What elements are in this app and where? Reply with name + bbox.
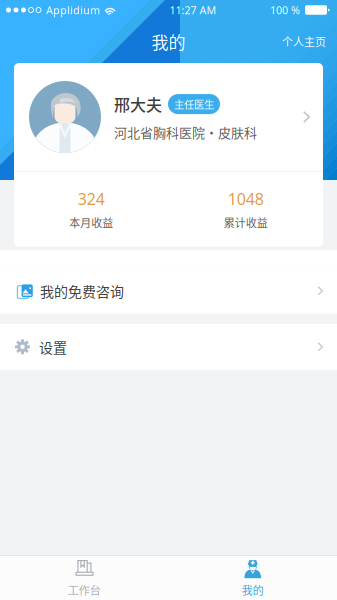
- staticText: 11:27 AM: [169, 3, 216, 17]
- staticText: 324: [78, 188, 105, 209]
- staticText: 邢大夫: [114, 92, 162, 116]
- button[interactable]: 我的免费咨询: [0, 268, 337, 314]
- button[interactable]: 我的: [168, 556, 337, 599]
- staticText: 我的免费咨询: [40, 281, 124, 301]
- button[interactable]: 邢大夫: [14, 63, 323, 171]
- staticText: 河北省胸科医院·皮肤科: [114, 123, 257, 141]
- staticText: 1048: [228, 188, 264, 209]
- staticText: 100 %: [270, 3, 300, 17]
- staticText: 我的: [242, 582, 264, 598]
- staticText: 个人主页: [282, 33, 326, 49]
- staticText: 我的: [151, 29, 185, 54]
- staticText: Applidium: [46, 3, 100, 17]
- staticText: 工作台: [68, 582, 101, 598]
- button[interactable]: 个人主页: [271, 26, 337, 56]
- button[interactable]: 工作台: [0, 556, 168, 599]
- staticText: 设置: [39, 337, 67, 357]
- button[interactable]: 设置: [0, 324, 337, 370]
- staticText: 主任医生: [174, 97, 214, 112]
- staticText: 累计收益: [224, 214, 268, 230]
- staticText: 本月收益: [69, 214, 113, 230]
